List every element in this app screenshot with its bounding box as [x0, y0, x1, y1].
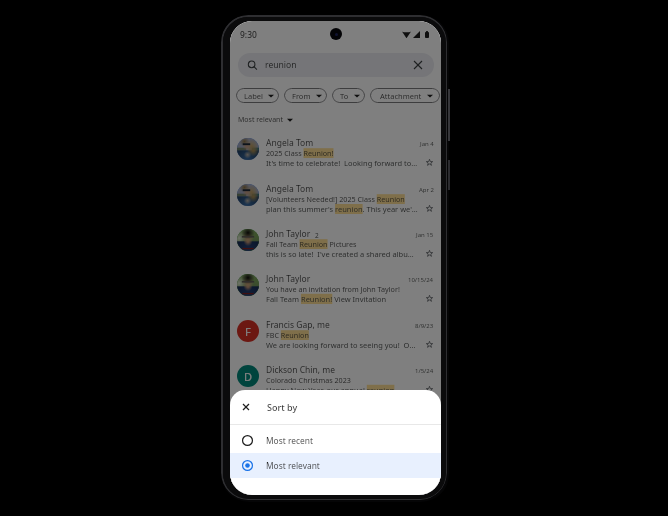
staticText: Happy New Year, our annual reunion… — [266, 385, 418, 395]
button[interactable]: To — [332, 88, 365, 103]
staticText: You have an invitation from John Taylor! — [266, 284, 434, 294]
staticText: reunion — [265, 59, 297, 71]
button[interactable]: Close — [243, 404, 249, 410]
button[interactable]: Star — [426, 295, 433, 302]
button[interactable]: John Taylor — [230, 270, 441, 315]
staticText: Jan 4 — [420, 140, 434, 148]
button[interactable]: From — [284, 88, 327, 103]
staticText: 2 — [315, 231, 319, 240]
staticText: [Volunteers Needed!] 2025 Class Reunion — [266, 194, 434, 204]
staticText: Angela Tom — [266, 183, 314, 195]
button[interactable]: John Taylor — [230, 225, 441, 270]
button[interactable]: Star — [426, 341, 433, 348]
staticText: John Taylor — [266, 228, 311, 240]
button[interactable]: Star — [426, 386, 433, 393]
staticText: 9:30 — [240, 29, 257, 41]
button[interactable]: Angela Tom — [230, 134, 441, 179]
staticText: plan this summer's reunion. This year we… — [266, 204, 418, 214]
button[interactable]: D — [230, 361, 441, 406]
staticText: 2025 Class Reunion! — [266, 148, 434, 158]
staticText: Label — [244, 91, 263, 101]
staticText: FBC Reunion — [266, 330, 434, 340]
staticText: Most relevant — [266, 460, 320, 471]
staticText: It's time to celebrate! Looking forward … — [266, 158, 418, 168]
staticText: Attachment — [380, 91, 422, 101]
staticText: Jan 15 — [416, 231, 434, 239]
staticText: From — [292, 91, 311, 101]
button[interactable]: Clear search — [414, 61, 422, 69]
staticText: Angela Tom — [266, 137, 314, 149]
staticText: F — [245, 324, 251, 339]
button[interactable]: Most relevant — [230, 453, 441, 478]
staticText: 1/5/24 — [415, 367, 434, 375]
button[interactable]: Star — [426, 159, 433, 166]
staticText: 10/15/24 — [408, 276, 434, 284]
button[interactable]: Label — [236, 88, 279, 103]
staticText: To — [340, 91, 349, 101]
staticText: Most relevant — [238, 115, 283, 125]
staticText: 8/9/23 — [415, 322, 434, 330]
button[interactable]: Star — [426, 205, 433, 212]
staticText: D — [244, 369, 253, 384]
staticText: Most recent — [266, 435, 313, 446]
staticText: Sort by — [267, 401, 298, 413]
button[interactable]: F — [230, 316, 441, 361]
staticText: Apr 2 — [419, 186, 434, 194]
button[interactable]: Most recent — [230, 425, 441, 453]
staticText: John Taylor — [266, 273, 311, 285]
button[interactable]: Most relevant — [236, 113, 295, 127]
other: Search — [247, 60, 258, 71]
button[interactable]: Search — [238, 53, 434, 77]
button[interactable]: Angela Tom — [230, 180, 441, 225]
staticText: Fall Team Reunion! View Invitation — [266, 294, 418, 304]
staticText: We are looking forward to seeing you! Ou… — [266, 340, 418, 350]
staticText: Dickson Chin, me — [266, 364, 335, 376]
button[interactable]: Star — [426, 250, 433, 257]
staticText: Colorado Christmas 2023 — [266, 375, 434, 385]
staticText: this is so late! I've created a shared a… — [266, 249, 418, 259]
button[interactable]: Attachment — [370, 88, 440, 103]
staticText: Fall Team Reunion Pictures — [266, 239, 434, 249]
staticText: Francis Gap, me — [266, 319, 330, 331]
